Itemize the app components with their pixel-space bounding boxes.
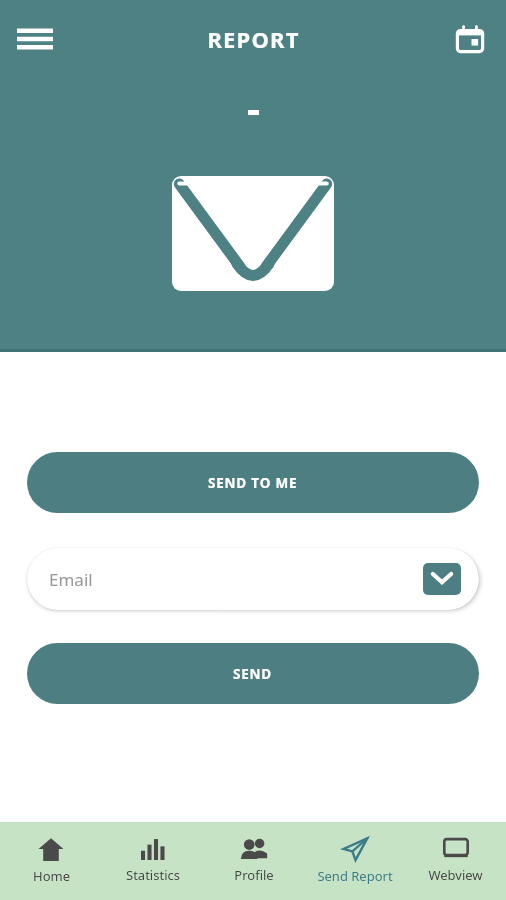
staticText: Webview — [428, 866, 483, 884]
button[interactable]: Email — [423, 563, 461, 595]
staticText: Profile — [234, 866, 274, 884]
button[interactable]: Home — [0, 822, 102, 900]
button[interactable]: Send Report — [304, 822, 405, 900]
button[interactable]: Webview — [405, 822, 506, 900]
staticText: Home — [33, 867, 70, 885]
button[interactable]: Email — [27, 548, 479, 610]
staticText: Email — [49, 568, 93, 591]
button[interactable]: Menu — [8, 12, 62, 66]
staticText: SEND TO ME — [208, 474, 298, 492]
staticText: REPORT — [207, 24, 300, 54]
staticText: SEND — [233, 665, 273, 683]
staticText: Send Report — [317, 867, 393, 885]
button[interactable]: Calendar — [444, 13, 496, 65]
button[interactable]: Statistics — [102, 822, 203, 900]
staticText: Statistics — [126, 866, 180, 884]
button[interactable]: Profile — [203, 822, 304, 900]
button[interactable]: SEND — [27, 643, 479, 704]
button[interactable]: SEND TO ME — [27, 452, 479, 513]
